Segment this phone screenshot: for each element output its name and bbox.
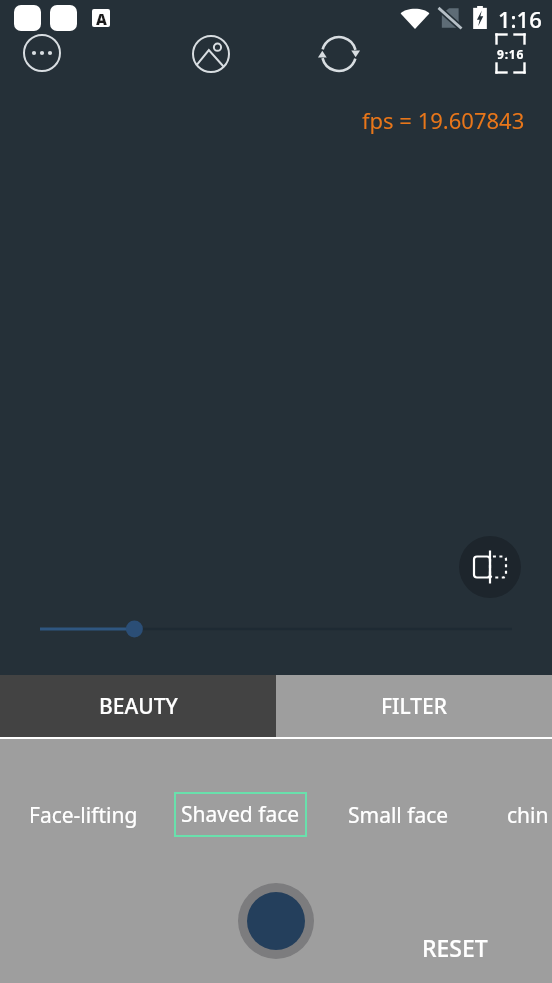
button[interactable]: More options: [22, 33, 62, 73]
staticText: A: [96, 9, 107, 27]
button[interactable]: Gallery: [191, 34, 231, 74]
button[interactable]: chin: [507, 794, 549, 837]
button[interactable]: Switch camera: [317, 32, 361, 76]
staticText: Small face: [348, 801, 449, 830]
staticText: BEAUTY: [99, 692, 178, 721]
button[interactable]: Aspect ratio 9 to 16: [495, 33, 526, 74]
staticText: 9:16: [497, 46, 525, 62]
button[interactable]: Face-lifting: [29, 794, 138, 837]
staticText: Face-lifting: [29, 801, 138, 830]
button[interactable]: Small face: [348, 794, 449, 837]
staticText: chin: [507, 801, 549, 830]
button[interactable]: BEAUTY: [0, 675, 276, 737]
staticText: Shaved face: [181, 800, 300, 829]
staticText: FILTER: [381, 692, 448, 721]
button[interactable]: Intensity slider: [0, 610, 552, 650]
staticText: 1:16: [498, 4, 542, 34]
button[interactable]: Shaved face: [174, 792, 307, 837]
button[interactable]: Shutter: [238, 883, 314, 959]
button[interactable]: Compare original: [459, 536, 521, 598]
button[interactable]: RESET: [414, 924, 496, 971]
staticText: fps = 19.607843: [362, 105, 525, 135]
button[interactable]: FILTER: [276, 675, 552, 737]
staticText: RESET: [422, 932, 488, 963]
